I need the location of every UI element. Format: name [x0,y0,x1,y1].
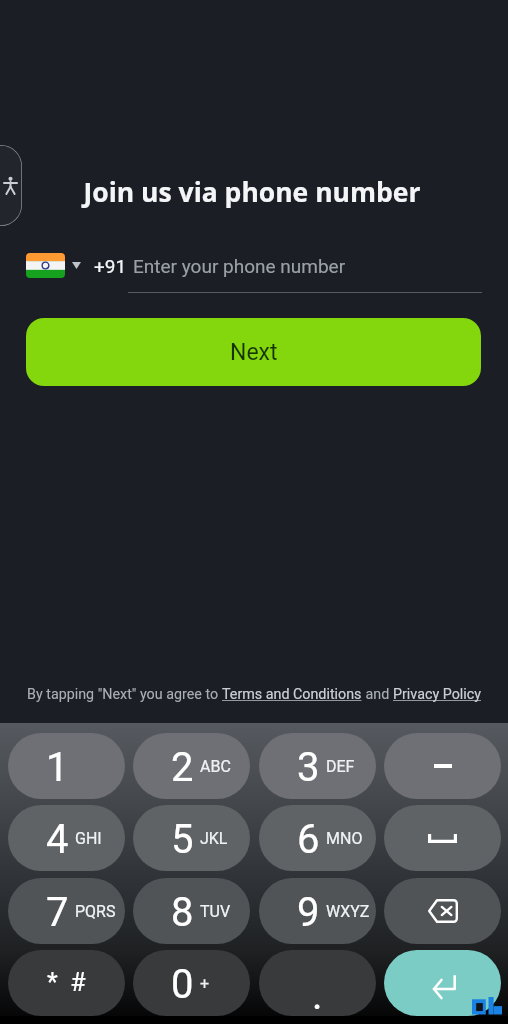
staticText: 8 [171,889,194,936]
staticText: JKL [200,829,228,848]
button[interactable]: 2 [133,733,250,799]
staticText: 0 [171,961,194,1008]
button[interactable]: 8 [133,878,250,944]
button[interactable]: . [259,950,376,1016]
button[interactable]: 4 [8,805,125,871]
button[interactable]: 6 [259,805,376,871]
button[interactable]: Dash [384,733,501,799]
staticText: TUV [200,902,231,921]
button[interactable]: Privacy Policy [393,686,482,703]
staticText: +91 [94,255,127,277]
staticText: . [312,972,323,1016]
staticText: Next [230,339,278,366]
staticText: 5 [171,816,194,863]
button[interactable]: Space [384,805,501,871]
staticText: 4 [46,816,69,863]
staticText: ABC [200,757,231,776]
button[interactable]: 7 [8,878,125,944]
staticText: Enter your phone number [133,255,346,277]
staticText: Join us via phone number [0,174,506,210]
button[interactable]: 5 [133,805,250,871]
button[interactable]: * # [8,950,125,1016]
button[interactable]: 9 [259,878,376,944]
staticText: * # [47,968,86,997]
button[interactable]: Backspace [384,878,501,944]
button[interactable]: Enter [384,950,501,1016]
button[interactable]: Terms and Conditions [222,686,362,703]
staticText: MNO [326,829,363,848]
staticText: 9 [297,889,320,936]
staticText: 6 [297,816,320,863]
staticText: WXYZ [326,902,370,921]
button[interactable]: Next [26,318,481,386]
button[interactable]: Accessibility menu [0,145,22,226]
button[interactable]: Select country code [26,253,127,278]
staticText: 7 [46,889,69,936]
staticText: 3 [297,744,320,791]
staticText: 1 [46,744,69,791]
staticText: PQRS [75,902,116,921]
button[interactable]: 1 [8,733,125,799]
button[interactable]: 0 [133,950,250,1016]
staticText: By tapping "Next" you agree to [27,686,222,703]
staticText: 2 [171,744,194,791]
staticText: + [200,974,210,993]
staticText: DEF [326,757,355,776]
button[interactable]: 3 [259,733,376,799]
staticText: GHI [75,829,102,848]
staticText: and [362,686,393,703]
